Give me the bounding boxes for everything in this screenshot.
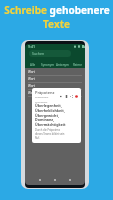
button[interactable]: Merken [65, 95, 68, 98]
button[interactable]: Anhören [60, 95, 63, 98]
staticText: dieses Teams bildet sein [35, 132, 65, 136]
staticText: Texte [43, 17, 70, 31]
staticText: Wort [28, 91, 35, 95]
staticText: Wort [28, 70, 35, 74]
staticText: Reime [73, 63, 82, 67]
staticText: Übermächtigkeit [35, 122, 66, 127]
button[interactable]: Synonym [40, 61, 55, 68]
button[interactable]: Alle [25, 61, 40, 68]
button[interactable]: Suchen [29, 50, 71, 57]
staticText: Substantiv [35, 100, 48, 103]
button[interactable]: Antonym [55, 61, 70, 68]
staticText: Antonym [56, 63, 69, 67]
staticText: Übergewicht, Dominanz, [35, 113, 78, 122]
button[interactable]: Reime [70, 61, 85, 68]
staticText: Wort [28, 84, 35, 88]
staticText: Wort [28, 77, 35, 81]
staticText: Ruf. [35, 136, 40, 140]
button[interactable]: Favorit [75, 95, 78, 98]
staticText: 9:41 [28, 44, 35, 49]
staticText: Durch die Präpotenz [35, 128, 60, 132]
staticText: Synonym [41, 63, 55, 67]
staticText: Überlegenheit, [35, 103, 62, 108]
staticText: Überheblichkeit, [35, 108, 65, 113]
staticText: Präpotenz [35, 90, 55, 95]
staticText: Alle [30, 63, 36, 67]
button[interactable]: Teilen [70, 95, 73, 98]
staticText: Schreibe gehobenere [4, 3, 110, 17]
staticText: Suchen [32, 51, 45, 56]
staticText: Präposition [35, 95, 49, 98]
